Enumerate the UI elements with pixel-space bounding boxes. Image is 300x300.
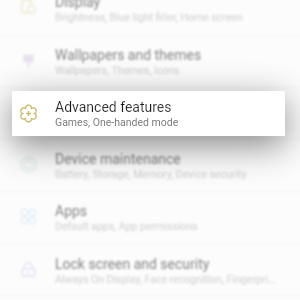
- button[interactable]: Advanced features: [0, 91, 300, 133]
- button[interactable]: Advanced features: [12, 91, 285, 136]
- staticText: Always On Display, Face recognition, Fin…: [55, 273, 277, 285]
- staticText: Games, One-handed mode: [55, 116, 179, 128]
- staticText: Wallpapers and themes: [55, 47, 202, 63]
- staticText: Games, One-handed mode: [55, 116, 179, 128]
- staticText: Display: [55, 0, 101, 10]
- staticText: Lock screen and security: [55, 256, 210, 272]
- staticText: Brightness, Blue light filter, Home scre…: [55, 11, 243, 23]
- button[interactable]: Wallpapers and themes: [0, 39, 300, 81]
- staticText: Device maintenance: [55, 151, 181, 167]
- button[interactable]: Display: [0, 0, 300, 28]
- staticText: Default apps, App permissions: [55, 220, 198, 232]
- staticText: Battery, Storage, Memory, Device securit…: [55, 168, 247, 180]
- button[interactable]: Apps: [0, 195, 300, 237]
- staticText: Apps: [55, 203, 88, 219]
- button[interactable]: Lock screen and security: [0, 248, 300, 290]
- staticText: Wallpapers, Themes, Icons: [55, 64, 180, 76]
- button[interactable]: Device maintenance: [0, 143, 300, 185]
- staticText: Advanced features: [55, 99, 172, 115]
- staticText: Advanced features: [55, 99, 172, 115]
